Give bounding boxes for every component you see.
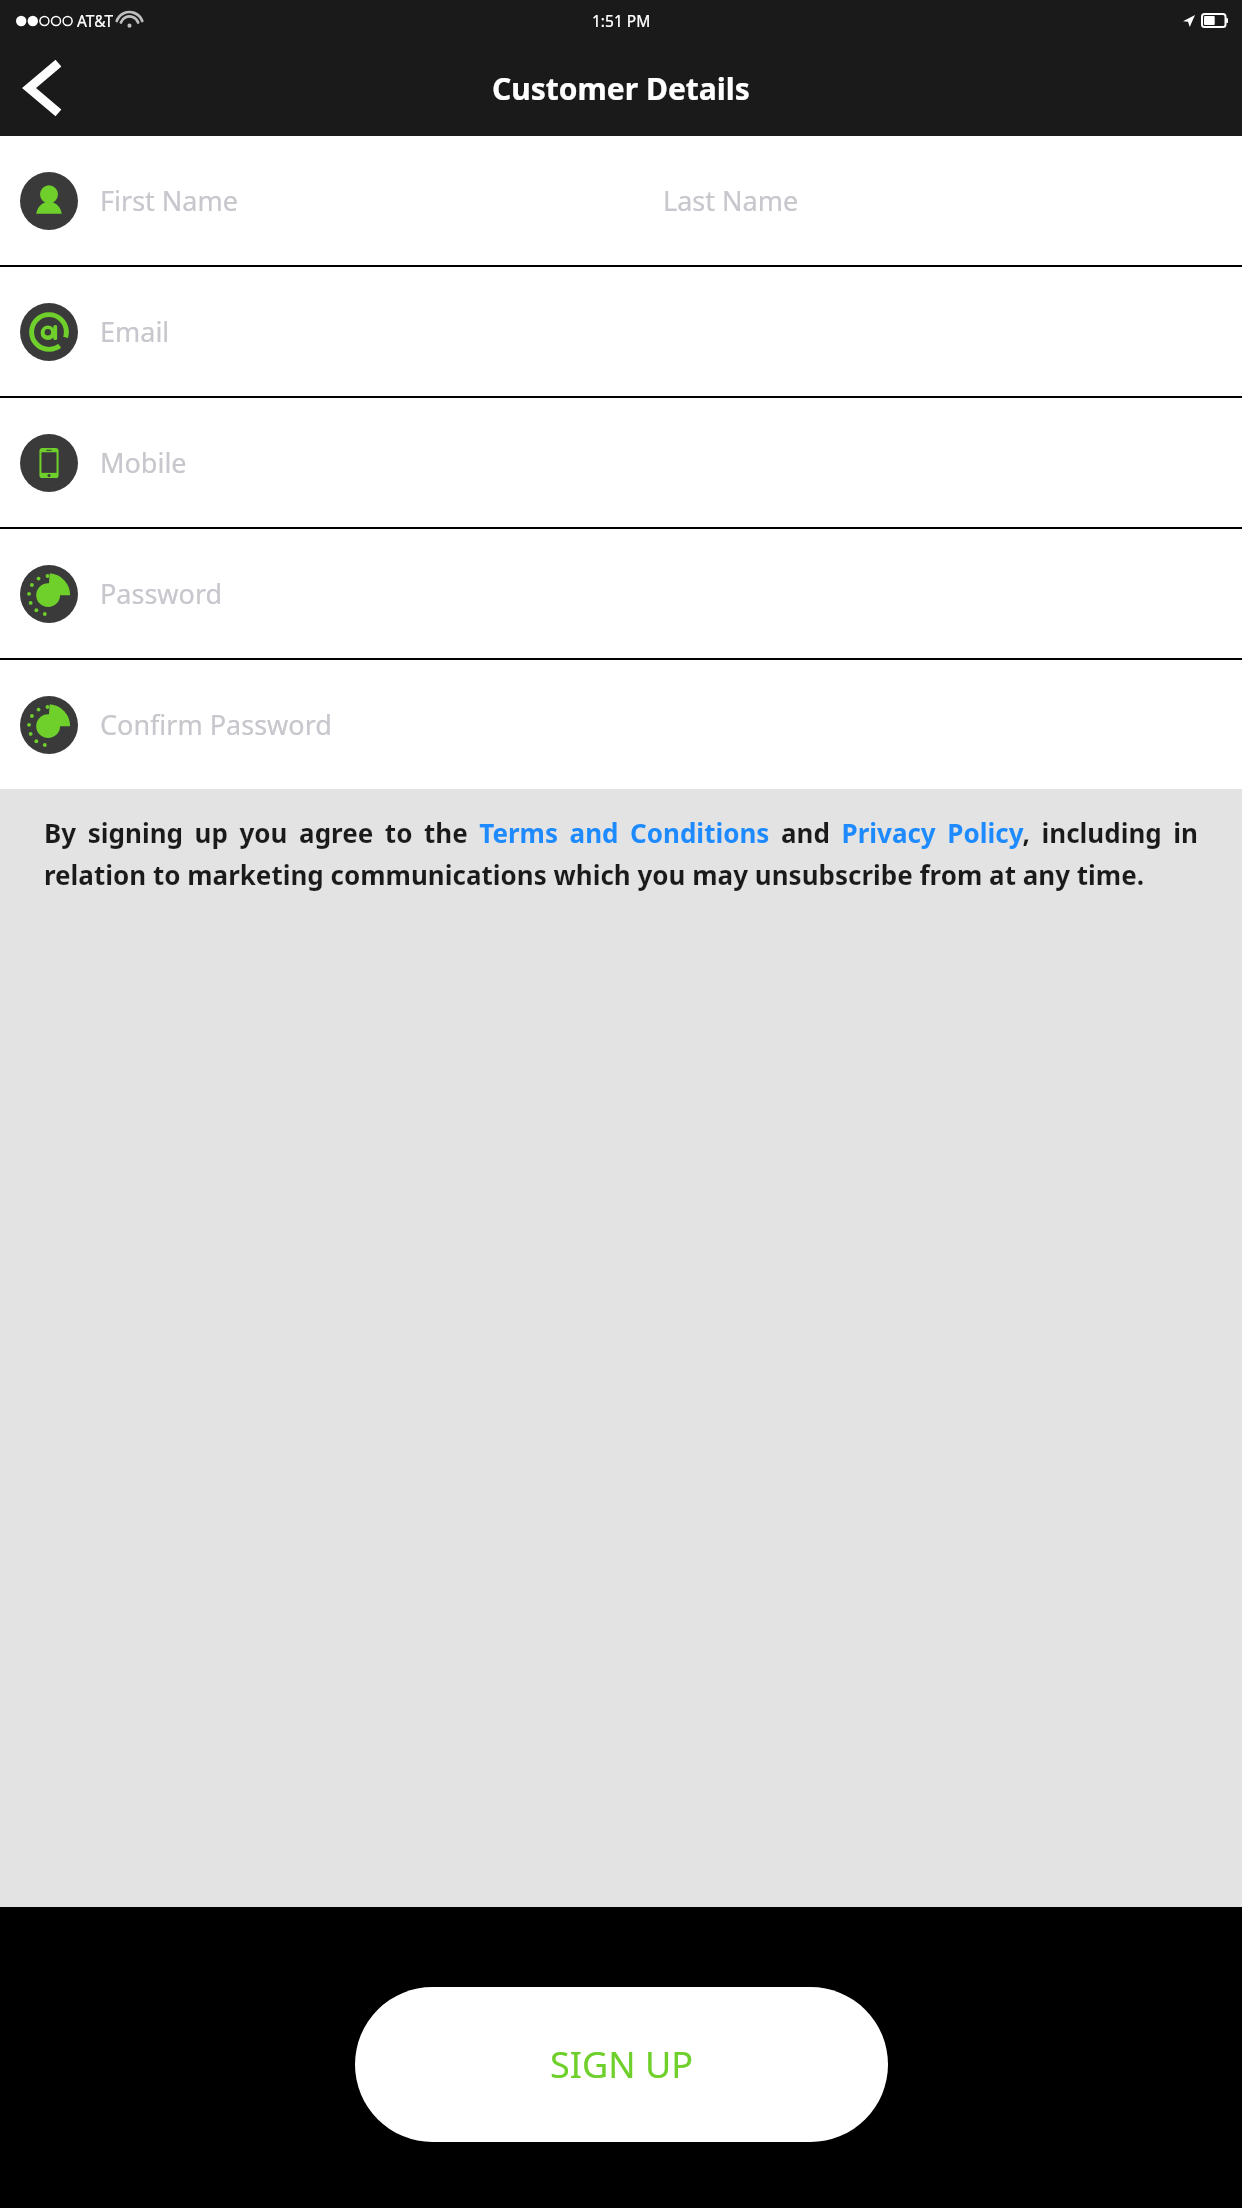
button[interactable]: Email xyxy=(0,267,1242,396)
button[interactable]: SIGN UP xyxy=(355,1987,888,2142)
button[interactable]: By signing up you agree to the Terms and… xyxy=(0,789,1242,917)
button[interactable]: Mobile xyxy=(0,398,1242,527)
staticText: AT&T xyxy=(77,10,114,31)
button[interactable]: Password xyxy=(0,529,1242,658)
staticText: By signing up you agree to the Terms and… xyxy=(44,815,1198,893)
button[interactable]: First Name xyxy=(0,136,1242,265)
staticText: 1:51 PM xyxy=(592,10,651,31)
staticText: Confirm Password xyxy=(100,706,332,743)
button[interactable]: Back xyxy=(6,52,78,124)
staticText: Email xyxy=(100,313,170,350)
staticText: Last Name xyxy=(663,182,799,219)
staticText: Customer Details xyxy=(492,68,750,109)
staticText: Password xyxy=(100,575,223,612)
staticText: First Name xyxy=(100,182,238,219)
staticText: Mobile xyxy=(100,444,187,481)
staticText: SIGN UP xyxy=(550,2040,693,2089)
button[interactable]: Confirm Password xyxy=(0,660,1242,789)
